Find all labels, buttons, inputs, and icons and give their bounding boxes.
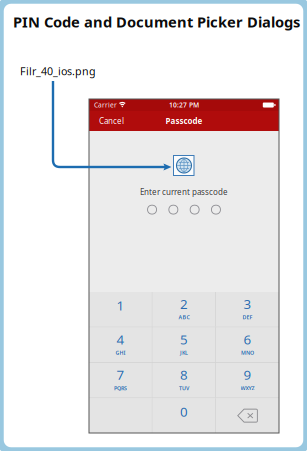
button[interactable]: 8 [153,363,215,398]
button[interactable]: 6 [216,327,279,362]
button[interactable]: 2 [153,292,215,327]
staticText: Cancel [99,116,124,126]
staticText: GHI [115,349,125,356]
staticText: 8 [180,366,188,383]
button[interactable]: 9 [216,363,279,398]
staticText: 9 [244,366,252,383]
button[interactable]: 7 [89,363,152,398]
staticText: WXYZ [241,384,255,392]
staticText: Enter current passcode [140,186,228,197]
button[interactable]: 1 [89,292,152,327]
staticText: MNO [241,349,254,356]
button[interactable]: 5 [153,327,215,362]
staticText: 3 [244,295,252,313]
staticText: 0 [180,403,188,420]
button[interactable]: Cancel [96,114,127,128]
staticText: 4 [116,330,124,348]
staticText: ABC [178,314,189,321]
staticText: 6 [244,330,252,348]
staticText: 5 [180,330,188,348]
staticText: PIN Code and Document Picker Dialogs [13,12,300,31]
button[interactable]: 4 [89,327,152,362]
staticText: 10:27 PM [169,101,199,109]
staticText: 1 [116,296,124,314]
button[interactable]: 0 [153,398,215,433]
staticText: 7 [116,366,124,383]
staticText: Filr_40_ios.png [20,64,96,78]
button[interactable]: Delete [216,398,279,433]
staticText: PQRS [114,384,127,392]
staticText: JKL [180,349,188,356]
staticText: 2 [180,295,188,313]
staticText: Passcode [165,116,202,126]
staticText: Carrier [94,101,117,109]
button[interactable]: 3 [216,292,279,327]
staticText: TUV [179,384,189,392]
staticText: DEF [243,314,253,321]
